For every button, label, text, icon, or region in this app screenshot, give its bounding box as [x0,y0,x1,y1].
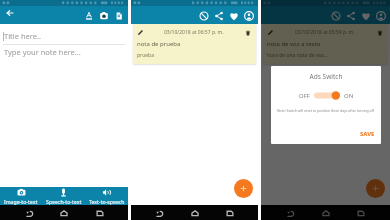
button[interactable]: Speech-to-text [42,187,85,205]
staticText: Title here.. [4,31,41,41]
button[interactable]: Favorites [226,8,241,23]
staticText: hora de una nota de voz... [267,52,328,59]
button[interactable]: SAVE [358,129,377,139]
button[interactable]: Back [283,206,297,220]
button[interactable]: Take photo [96,8,111,23]
staticText: nota de prueba [137,40,181,48]
button[interactable]: Back [152,206,166,220]
staticText: Text-to-speech [89,198,125,205]
button[interactable]: Recents [354,206,368,220]
button[interactable]: Text-to-speech [85,187,128,205]
button[interactable]: Image-to-text [0,187,42,205]
staticText: 03/10/2018 at 05:59 p. m. [295,29,355,36]
staticText: ON [344,92,354,100]
button[interactable]: 03/10/2018 at 06:57 p. m. [133,24,256,64]
staticText: Note: Switch will reset to position thre… [277,108,374,113]
button[interactable]: Home [188,206,202,220]
button[interactable]: New note [366,179,385,198]
button[interactable]: New note [234,179,253,198]
staticText: nota de voz a texto [267,40,321,48]
staticText: OFF [299,92,310,100]
button[interactable]: Home [57,206,71,220]
staticText: Ads Switch [275,72,377,81]
staticText: SAVE [360,130,375,138]
button[interactable]: Recents [93,206,107,220]
button[interactable]: Recents [223,206,237,220]
button[interactable]: Share [343,8,358,23]
button[interactable]: Text format [81,8,96,23]
staticText: prueba [137,52,154,59]
button[interactable]: Hide ads [196,8,211,23]
button[interactable]: Back [22,206,36,220]
button[interactable]: Hide ads [328,8,343,23]
button[interactable]: Account [241,8,256,23]
button[interactable]: Favorites [358,8,373,23]
button[interactable]: Ads toggle [314,90,340,101]
staticText: 03/10/2018 at 06:57 p. m. [164,29,224,36]
button[interactable]: Attach file [111,8,126,23]
staticText: Type your note here... [4,47,81,57]
button[interactable]: Home [319,206,333,220]
button[interactable]: Share [211,8,226,23]
button[interactable]: Back [3,6,17,20]
button[interactable]: Account [373,8,388,23]
staticText: Speech-to-text [46,198,82,205]
staticText: Image-to-text [4,198,38,205]
button[interactable]: 03/10/2018 at 05:59 p. m. [263,24,388,64]
